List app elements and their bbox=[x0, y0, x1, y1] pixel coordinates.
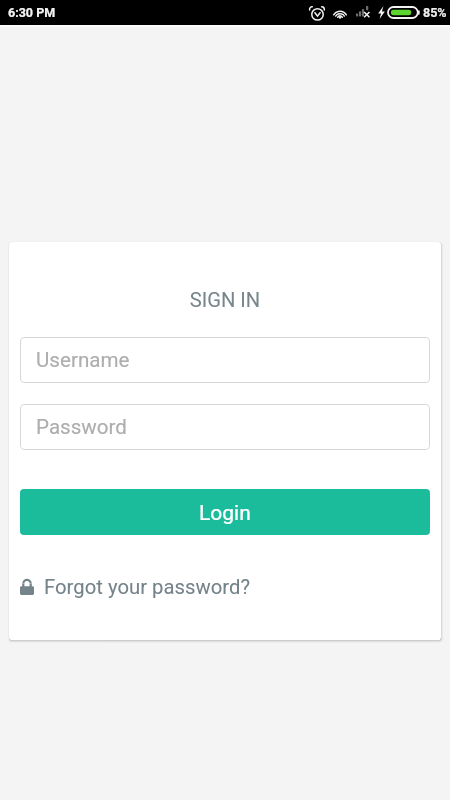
button[interactable]: Password bbox=[20, 404, 430, 450]
staticText: Username bbox=[36, 348, 130, 372]
staticText: 85% bbox=[423, 5, 447, 20]
staticText: 6:30 PM bbox=[8, 5, 56, 20]
staticText: SIGN IN bbox=[9, 288, 441, 312]
other: Secure bbox=[20, 579, 34, 595]
staticText: Password bbox=[36, 415, 127, 439]
staticText: Login bbox=[199, 501, 251, 526]
button[interactable]: Login bbox=[20, 489, 430, 535]
staticText: Forgot your password? bbox=[44, 575, 251, 599]
button[interactable]: Username bbox=[20, 337, 430, 383]
button[interactable]: Secure bbox=[20, 569, 251, 605]
